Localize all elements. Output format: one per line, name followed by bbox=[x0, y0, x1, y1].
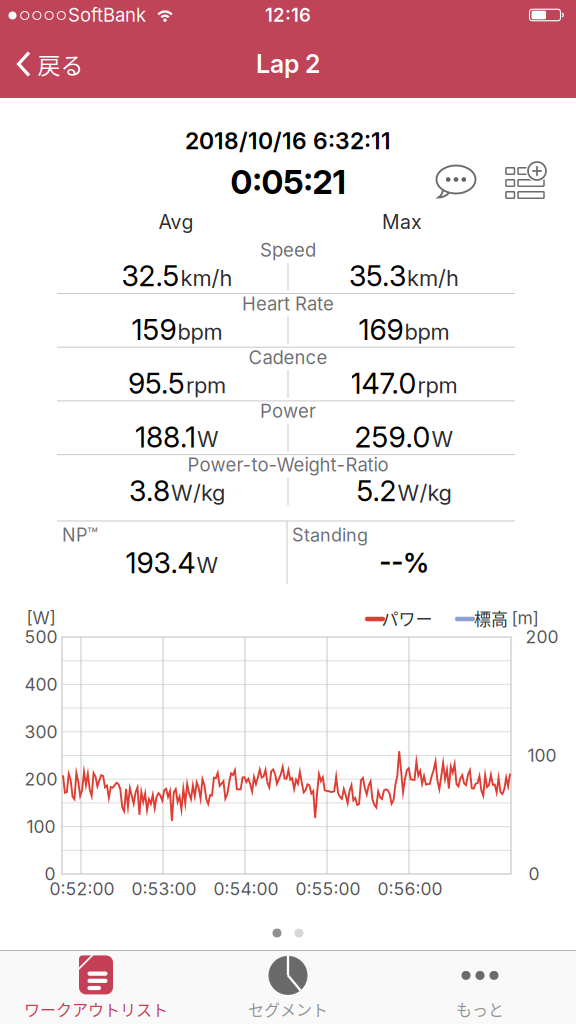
staticText: パワー bbox=[381, 606, 432, 630]
staticText: 95.5 bbox=[128, 366, 185, 401]
staticText: 0 bbox=[44, 863, 55, 885]
staticText: bpm bbox=[404, 318, 449, 345]
staticText: 193.4 bbox=[125, 546, 195, 580]
staticText: 200 bbox=[525, 626, 558, 648]
staticText: Max bbox=[382, 210, 422, 234]
staticText: 100 bbox=[26, 816, 55, 837]
staticText: 500 bbox=[24, 626, 57, 648]
staticText: rpm bbox=[417, 372, 457, 399]
staticText: ワークアウトリスト bbox=[24, 997, 168, 1021]
staticText: 100 bbox=[527, 745, 556, 766]
staticText: 0:55:00 bbox=[295, 878, 360, 900]
staticText: Standing bbox=[292, 524, 368, 546]
staticText: 300 bbox=[24, 721, 57, 742]
staticText: SoftBank bbox=[68, 4, 146, 26]
staticText: W/kg bbox=[397, 479, 451, 506]
staticText: 3.8 bbox=[129, 474, 170, 508]
staticText: km/h bbox=[180, 265, 232, 291]
staticText: 2018/10/16 6:32:11 bbox=[185, 127, 391, 155]
staticText: Heart Rate bbox=[242, 292, 334, 315]
staticText: 0:05:21 bbox=[230, 162, 345, 202]
staticText: W bbox=[197, 426, 219, 452]
button[interactable]: ワークアウトリスト bbox=[0, 952, 192, 1024]
staticText: Cadence bbox=[248, 346, 327, 369]
staticText: 戻る bbox=[37, 47, 83, 81]
staticText: 159 bbox=[131, 312, 176, 347]
staticText: [W] bbox=[26, 607, 55, 629]
button[interactable]: Comments bbox=[435, 165, 477, 199]
staticText: 32.5 bbox=[121, 259, 179, 293]
staticText: 400 bbox=[24, 674, 57, 695]
staticText: Power-to-Weight-Ratio bbox=[187, 454, 388, 476]
staticText: W bbox=[196, 552, 218, 578]
staticText: セグメント bbox=[248, 997, 328, 1021]
staticText: 0:52:00 bbox=[49, 878, 114, 900]
staticText: 標高 bbox=[474, 606, 508, 630]
staticText: km/h bbox=[407, 265, 459, 291]
staticText: 188.1 bbox=[135, 420, 196, 454]
staticText: rpm bbox=[186, 372, 226, 399]
staticText: 0:53:00 bbox=[131, 878, 196, 900]
staticText: 0:56:00 bbox=[377, 878, 442, 900]
staticText: 259.0 bbox=[354, 420, 430, 454]
button[interactable]: セグメント bbox=[192, 952, 384, 1024]
staticText: --% bbox=[379, 547, 429, 579]
staticText: 12:16 bbox=[265, 4, 311, 26]
staticText: NP™ bbox=[62, 524, 98, 546]
staticText: Avg bbox=[158, 210, 193, 234]
staticText: 169 bbox=[358, 312, 403, 347]
staticText: 0:54:00 bbox=[213, 878, 278, 900]
staticText: 200 bbox=[24, 769, 57, 790]
staticText: [m] bbox=[511, 607, 538, 629]
staticText: 147.0 bbox=[350, 366, 416, 401]
staticText: もっと bbox=[456, 997, 504, 1021]
staticText: W/kg bbox=[171, 479, 225, 506]
button[interactable]: もっと bbox=[384, 952, 576, 1024]
staticText: 5.2 bbox=[356, 474, 396, 508]
staticText: W bbox=[431, 426, 453, 452]
staticText: 0 bbox=[528, 863, 539, 885]
staticText: bpm bbox=[177, 318, 222, 345]
staticText: Lap 2 bbox=[256, 49, 320, 79]
staticText: Speed bbox=[260, 239, 316, 261]
button[interactable]: 戻る bbox=[16, 47, 83, 81]
button[interactable]: Add to list bbox=[504, 162, 548, 202]
staticText: Power bbox=[260, 400, 316, 422]
staticText: 35.3 bbox=[349, 259, 406, 293]
